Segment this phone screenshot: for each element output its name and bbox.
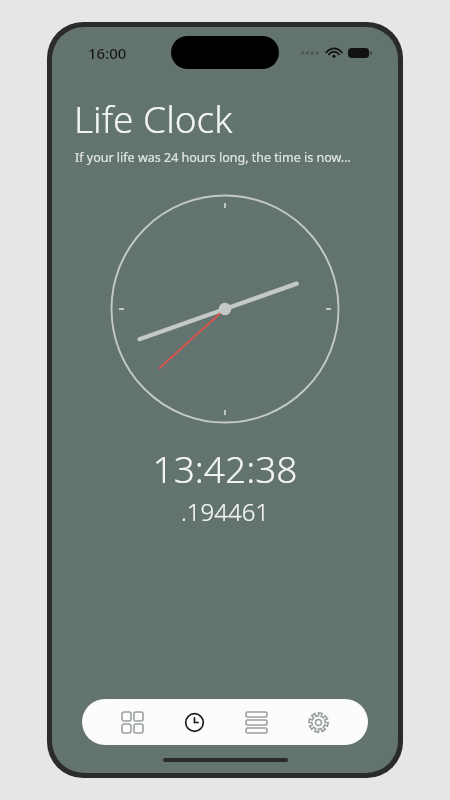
staticText: 13:42:38 bbox=[52, 443, 398, 493]
button[interactable]: Clock bbox=[172, 700, 216, 744]
staticText: Life Clock bbox=[74, 93, 233, 143]
staticText: If your life was 24 hours long, the time… bbox=[75, 149, 351, 166]
button[interactable]: List bbox=[234, 700, 278, 744]
staticText: 16:00 bbox=[88, 43, 127, 63]
button[interactable]: Settings bbox=[296, 700, 340, 744]
button[interactable]: Dashboard bbox=[110, 700, 154, 744]
staticText: .194461 bbox=[52, 495, 398, 528]
